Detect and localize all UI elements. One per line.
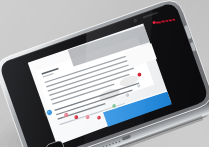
button[interactable]: Smartphone product photo xyxy=(0,0,209,147)
